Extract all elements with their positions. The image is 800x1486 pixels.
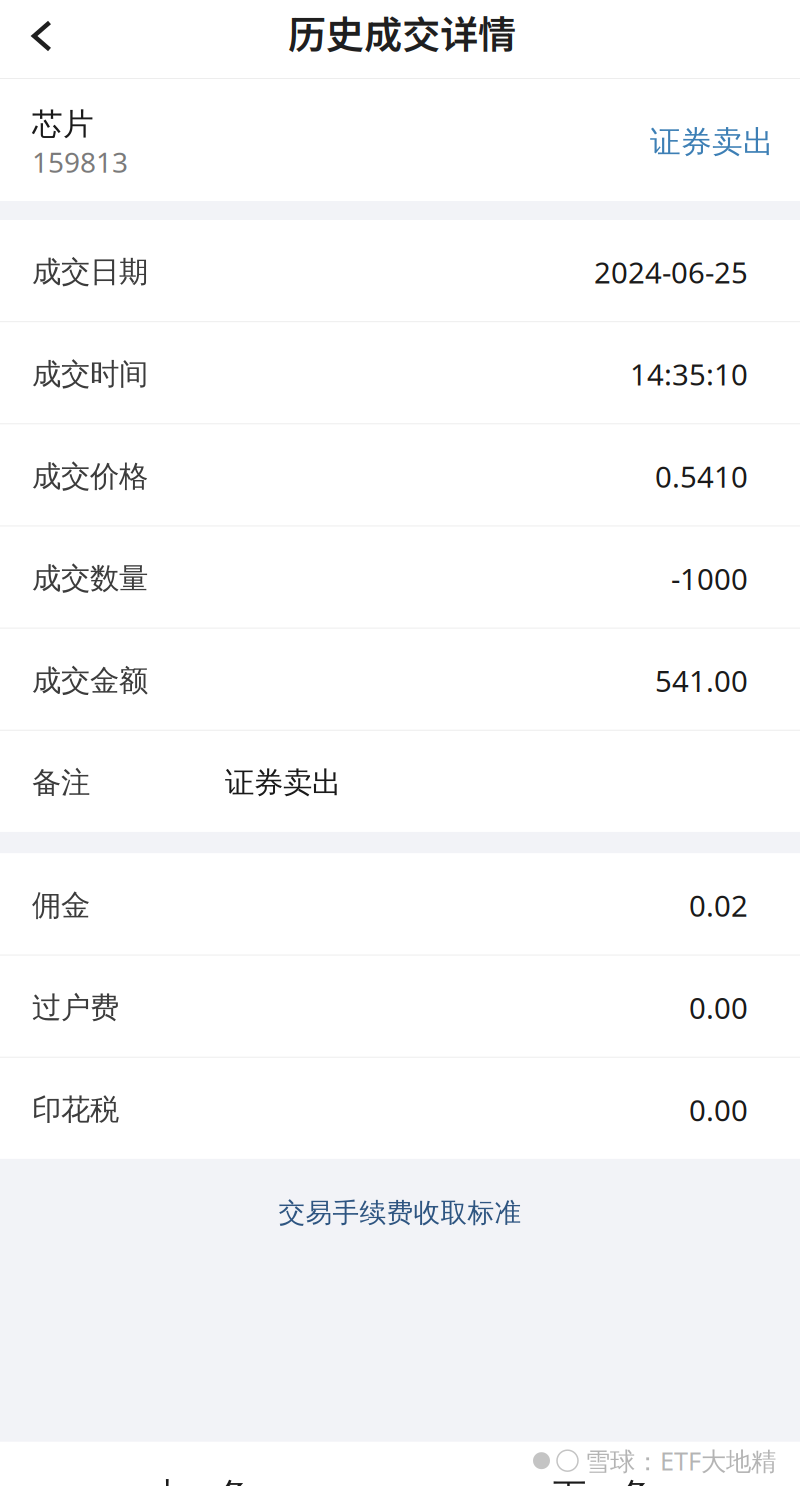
button[interactable]: 成交金额	[0, 629, 800, 730]
button[interactable]: 成交价格	[0, 424, 800, 525]
staticText: 0.00	[689, 1090, 748, 1129]
staticText: 0.5410	[655, 457, 748, 496]
button[interactable]: 成交时间	[0, 322, 800, 423]
staticText: 14:35:10	[630, 355, 748, 394]
staticText: 159813	[32, 143, 128, 180]
staticText: 成交数量	[32, 560, 148, 596]
staticText: 下一条	[553, 1475, 652, 1486]
staticText: 成交时间	[32, 356, 148, 392]
staticText: 0.00	[689, 988, 748, 1027]
button[interactable]: 备注	[0, 731, 800, 832]
staticText: 成交金额	[32, 663, 148, 699]
staticText: 历史成交详情	[288, 4, 516, 60]
staticText: 成交价格	[32, 458, 148, 494]
staticText: 过户费	[32, 990, 119, 1026]
button[interactable]: 印花税	[0, 1058, 800, 1159]
button[interactable]: 过户费	[0, 955, 800, 1057]
staticText: 上一条	[151, 1475, 250, 1486]
staticText: 成交日期	[32, 254, 148, 290]
button[interactable]: 证券卖出	[644, 121, 768, 159]
staticText: 交易手续费收取标准	[278, 1196, 521, 1229]
button[interactable]: 成交数量	[0, 526, 800, 628]
staticText: 备注	[32, 765, 90, 801]
staticText: -1000	[671, 559, 748, 598]
staticText: 0.02	[689, 886, 748, 925]
staticText: 芯片	[32, 106, 94, 143]
button[interactable]: 交易手续费收取标准	[0, 1193, 800, 1233]
button[interactable]: 成交日期	[0, 220, 800, 321]
staticText: 证券卖出	[650, 123, 774, 161]
button[interactable]: Back	[0, 0, 78, 78]
staticText: 2024-06-25	[594, 253, 748, 292]
staticText: 佣金	[32, 887, 90, 923]
staticText: 印花税	[32, 1092, 119, 1128]
staticText: 证券卖出	[225, 765, 341, 801]
staticText: 雪球：ETF大地精	[585, 1444, 776, 1477]
staticText: 541.00	[655, 661, 748, 700]
button[interactable]: 佣金	[0, 853, 800, 955]
